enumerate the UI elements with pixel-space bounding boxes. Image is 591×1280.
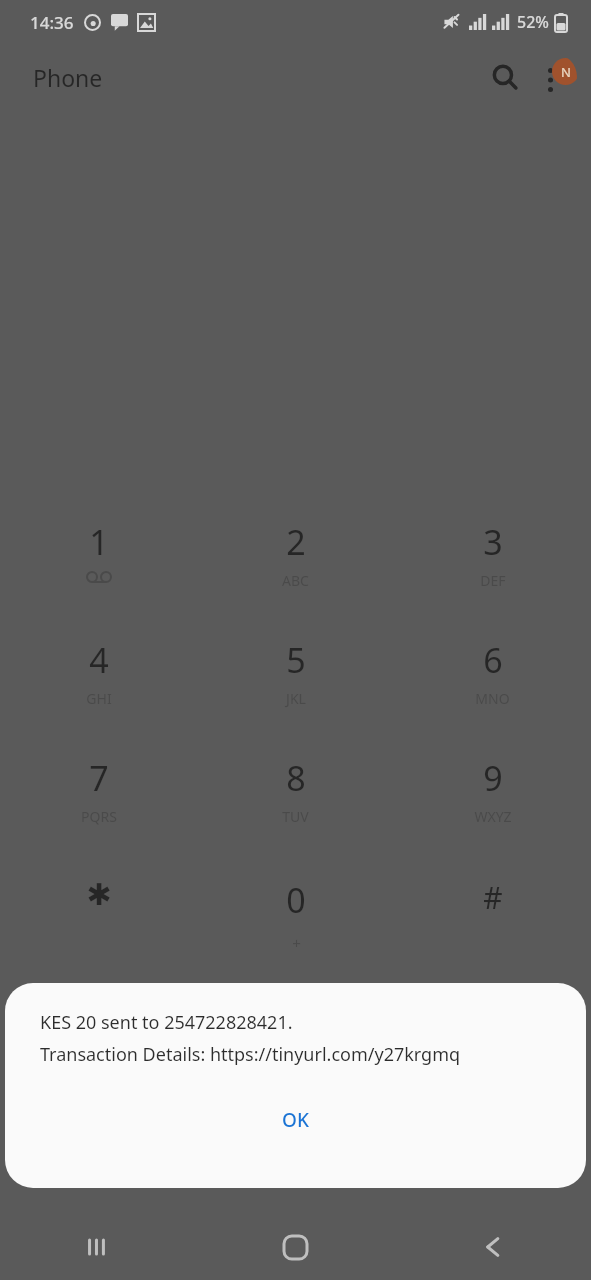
- button[interactable]: #: [394, 859, 591, 977]
- staticText: N: [561, 63, 571, 81]
- staticText: ABC: [282, 571, 309, 590]
- staticText: 1: [89, 519, 109, 565]
- staticText: 6: [483, 637, 503, 683]
- staticText: 3: [483, 519, 503, 565]
- staticText: TUV: [282, 807, 309, 826]
- staticText: DEF: [480, 571, 506, 590]
- staticText: 2: [286, 519, 306, 565]
- button[interactable]: 0: [197, 859, 394, 977]
- staticText: #: [483, 877, 503, 918]
- button[interactable]: 6: [394, 623, 591, 741]
- button[interactable]: 4: [0, 623, 197, 741]
- staticText: 8: [286, 755, 306, 801]
- staticText: OK: [282, 1107, 309, 1133]
- staticText: +: [292, 933, 301, 953]
- staticText: WXYZ: [474, 807, 512, 826]
- staticText: PQRS: [81, 807, 117, 826]
- button[interactable]: 5: [197, 623, 394, 741]
- button[interactable]: 9: [394, 741, 591, 859]
- button[interactable]: 3: [394, 505, 591, 623]
- staticText: 5: [286, 637, 306, 683]
- button[interactable]: Home: [197, 1214, 394, 1280]
- button[interactable]: Search: [481, 53, 529, 101]
- button[interactable]: More options: [529, 53, 577, 101]
- staticText: ✱: [86, 877, 112, 912]
- staticText: MNO: [475, 689, 510, 708]
- staticText: 14:36: [30, 11, 74, 34]
- button[interactable]: 2: [197, 505, 394, 623]
- button[interactable]: 8: [197, 741, 394, 859]
- staticText: 4: [89, 637, 109, 683]
- button[interactable]: Recents: [0, 1214, 197, 1280]
- staticText: 0: [286, 877, 306, 923]
- staticText: Phone: [33, 62, 103, 93]
- staticText: JKL: [286, 689, 306, 708]
- staticText: 52%: [517, 11, 549, 33]
- button[interactable]: OK: [254, 1097, 337, 1143]
- staticText: Transaction Details: https://tinyurl.com…: [40, 1042, 461, 1067]
- staticText: KES 20 sent to 254722828421.: [40, 1010, 293, 1035]
- staticText: 9: [483, 755, 503, 801]
- staticText: GHI: [86, 689, 112, 708]
- button[interactable]: 1: [0, 505, 197, 623]
- staticText: 7: [89, 755, 109, 801]
- button[interactable]: ✱: [0, 859, 197, 977]
- button[interactable]: 7: [0, 741, 197, 859]
- button[interactable]: Back: [394, 1214, 591, 1280]
